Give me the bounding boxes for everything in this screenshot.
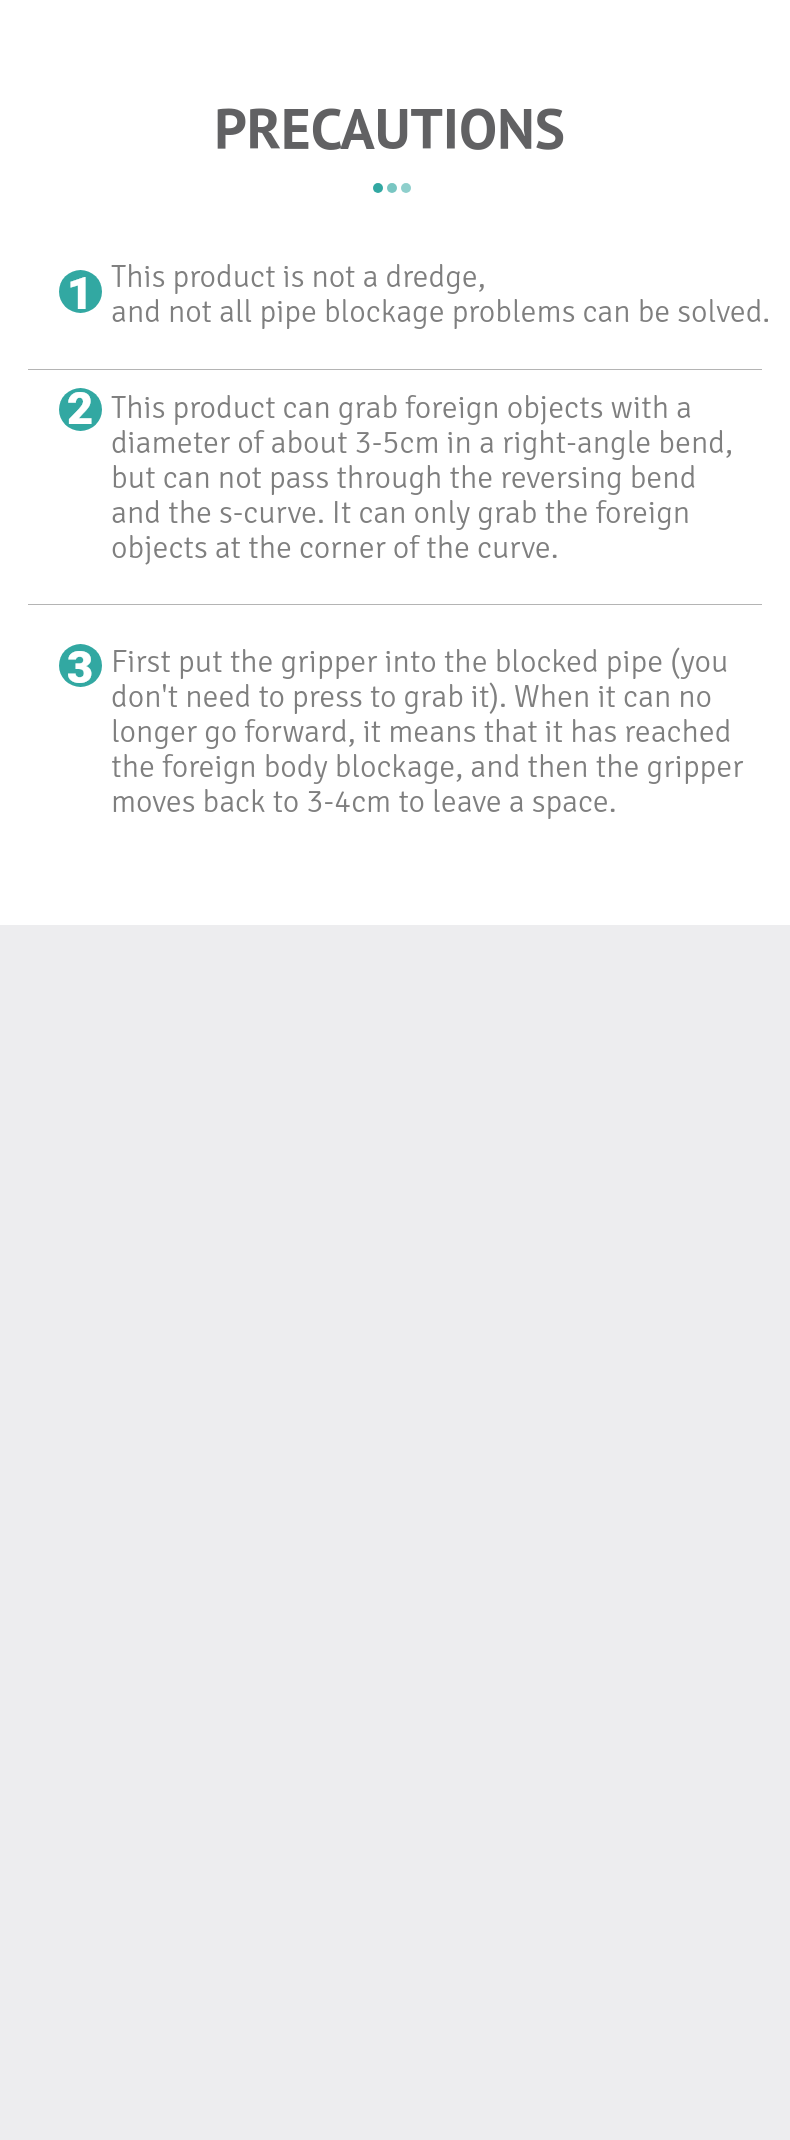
staticText: longer go forward, it means that it has … [111,715,732,750]
staticText: 1 [67,270,94,310]
staticText: and not all pipe blockage problems can b… [111,295,771,330]
staticText: don't need to press to grab it). When it… [111,680,713,715]
staticText: diameter of about 3-5cm in a right-angle… [111,426,733,461]
staticText: PRECAUTIONS [214,91,565,165]
staticText: the foreign body blockage, and then the … [111,750,744,785]
staticText: This product is not a dredge, [111,260,486,295]
button[interactable]: Precautions [0,91,784,165]
button[interactable]: 2 [0,370,790,581]
staticText: First put the gripper into the blocked p… [111,645,729,680]
staticText: objects at the corner of the curve. [111,531,559,566]
staticText: but can not pass through the reversing b… [111,461,697,496]
button[interactable]: 3 [0,626,790,837]
button[interactable]: 1 [0,252,790,358]
staticText: and the s-curve. It can only grab the fo… [111,496,691,531]
staticText: 2 [67,388,94,425]
staticText: moves back to 3-4cm to leave a space. [111,785,617,820]
staticText: This product can grab foreign objects wi… [111,391,692,426]
staticText: 3 [67,644,94,684]
